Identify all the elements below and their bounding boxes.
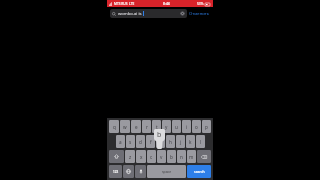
staticText: search — [194, 169, 205, 174]
button[interactable]: b — [167, 150, 176, 163]
staticText: o — [195, 124, 198, 130]
staticText: w — [123, 124, 127, 130]
button[interactable]: n — [177, 150, 186, 163]
button[interactable]: wombo.ai is — [110, 9, 187, 18]
button[interactable]: u — [172, 120, 181, 133]
staticText: k — [189, 139, 192, 145]
button[interactable]: Clear text — [180, 11, 185, 16]
button[interactable]: s — [126, 135, 135, 148]
staticText: p — [205, 124, 208, 130]
staticText: v — [160, 154, 163, 160]
staticText: f — [150, 139, 152, 145]
button[interactable]: space — [147, 165, 186, 178]
button[interactable]: o — [192, 120, 201, 133]
button[interactable]: w — [120, 120, 130, 133]
staticText: x — [140, 154, 143, 160]
staticText: b — [157, 130, 162, 140]
button[interactable]: a — [116, 135, 125, 148]
button[interactable]: Отменить — [189, 9, 210, 18]
staticText: r — [146, 124, 148, 130]
staticText: MTS RUS LTE — [114, 2, 135, 6]
staticText: c — [150, 154, 153, 160]
button[interactable]: search — [187, 165, 211, 178]
staticText: y — [165, 124, 168, 130]
staticText: h — [169, 139, 172, 145]
staticText: z — [129, 154, 132, 160]
staticText: 53% — [197, 2, 204, 6]
staticText: wombo.ai is — [118, 11, 142, 17]
staticText: j — [180, 139, 182, 145]
button[interactable]: d — [136, 135, 145, 148]
button[interactable]: y — [162, 120, 171, 133]
staticText: d — [139, 139, 142, 145]
staticText: space — [162, 169, 172, 174]
staticText: s — [129, 139, 132, 145]
staticText: t — [156, 124, 158, 130]
button[interactable]: j — [176, 135, 185, 148]
staticText: b — [170, 154, 173, 160]
staticText: a — [119, 139, 122, 145]
button[interactable]: r — [142, 120, 151, 133]
button[interactable]: p — [202, 120, 211, 133]
button[interactable]: z — [125, 150, 135, 163]
button[interactable]: i — [182, 120, 191, 133]
button[interactable]: k — [186, 135, 195, 148]
staticText: 123 — [113, 170, 119, 174]
button[interactable]: Shift — [109, 150, 124, 163]
staticText: 8:44 — [163, 1, 170, 6]
staticText: n — [180, 154, 183, 160]
button[interactable]: f — [146, 135, 155, 148]
staticText: e — [135, 124, 138, 130]
button[interactable]: Backspace — [197, 150, 211, 163]
button[interactable]: x — [136, 150, 146, 163]
button[interactable]: c — [147, 150, 156, 163]
staticText: l — [200, 139, 202, 145]
button[interactable]: m — [187, 150, 196, 163]
button[interactable]: q — [109, 120, 119, 133]
button[interactable]: h — [166, 135, 175, 148]
staticText: q — [113, 124, 116, 130]
button[interactable]: e — [131, 120, 141, 133]
staticText: m — [189, 154, 194, 160]
staticText: i — [186, 124, 188, 130]
button[interactable]: Emoji — [123, 165, 134, 178]
button[interactable]: 123 — [109, 165, 122, 178]
button[interactable]: v — [157, 150, 166, 163]
button[interactable]: g — [156, 135, 165, 148]
button[interactable]: l — [196, 135, 205, 148]
button[interactable]: Dictation — [135, 165, 146, 178]
staticText: Отменить — [189, 11, 210, 17]
button[interactable]: t — [152, 120, 161, 133]
staticText: u — [175, 124, 178, 130]
